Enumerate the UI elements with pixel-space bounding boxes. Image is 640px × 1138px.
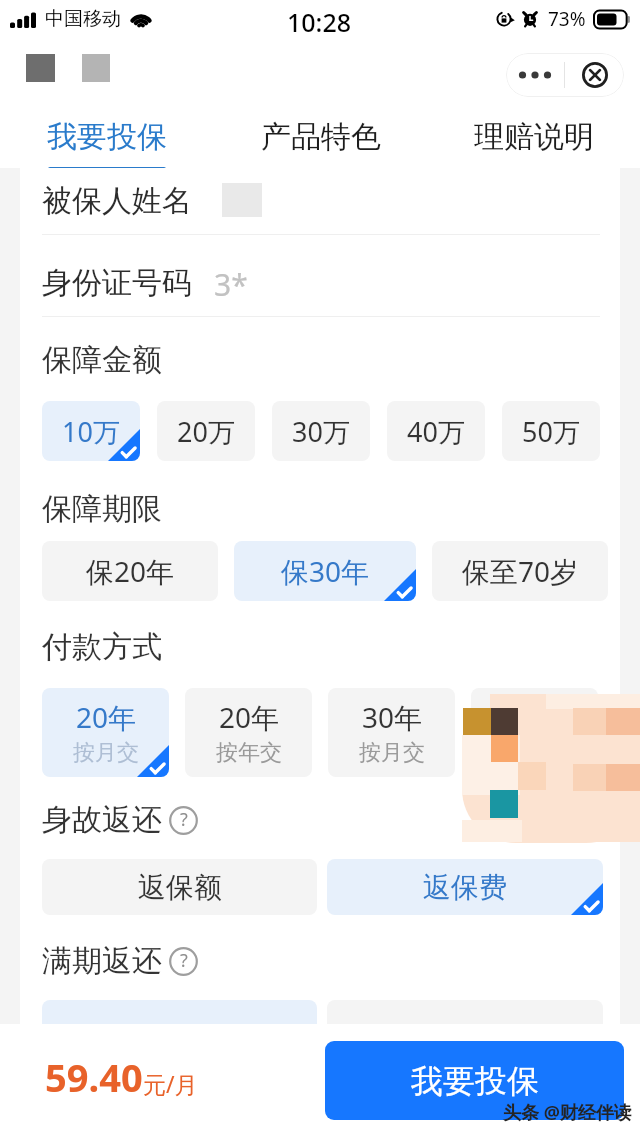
staticText: 按月交: [73, 739, 139, 767]
staticText: 身份证号码: [42, 264, 192, 300]
button[interactable]: 保20年: [42, 541, 218, 601]
staticText: 元/月: [143, 1068, 198, 1099]
staticText: 20年: [219, 698, 280, 736]
staticText: 40万: [407, 413, 465, 450]
button[interactable]: 理赔说明: [427, 106, 640, 168]
staticText: 20万: [177, 413, 235, 450]
staticText: 3*: [214, 264, 248, 300]
staticText: 返保费: [423, 870, 507, 905]
button[interactable]: 10万: [42, 401, 140, 461]
button[interactable]: 30万: [272, 401, 370, 461]
staticText: 30年: [362, 698, 423, 736]
staticText: 中国移动: [45, 7, 121, 31]
button[interactable]: 40万: [387, 401, 485, 461]
button[interactable]: 50万: [502, 401, 600, 461]
button[interactable]: Close: [565, 53, 624, 97]
button[interactable]: 返保额: [42, 859, 317, 915]
button[interactable]: 20年: [42, 688, 169, 777]
button[interactable]: 20万: [157, 401, 255, 461]
staticText: 保20年: [86, 552, 175, 590]
button[interactable]: 产品特色: [214, 106, 427, 168]
button[interactable]: [471, 688, 598, 777]
staticText: 身故返还: [42, 801, 162, 839]
staticText: 被保人姓名: [42, 182, 192, 218]
staticText: 付款方式: [42, 628, 162, 666]
staticText: 按年交: [216, 739, 282, 767]
button[interactable]: 保30年: [234, 541, 416, 601]
staticText: 73%: [548, 6, 586, 32]
staticText: 满期返还: [42, 942, 162, 980]
staticText: 59.40: [45, 1051, 143, 1103]
staticText: 30万: [292, 413, 350, 450]
staticText: 产品特色: [261, 118, 381, 156]
staticText: 10万: [62, 413, 120, 450]
staticText: 50万: [522, 413, 580, 450]
button[interactable]: [42, 1000, 317, 1056]
button[interactable]: 我要投保: [325, 1041, 624, 1120]
button[interactable]: [327, 1000, 603, 1056]
button[interactable]: 返保费: [327, 859, 603, 915]
staticText: 返保额: [138, 870, 222, 905]
button[interactable]: 20年: [185, 688, 312, 777]
button[interactable]: More options: [506, 53, 564, 97]
staticText: 保至70岁: [462, 552, 579, 590]
staticText: ?: [180, 948, 188, 973]
staticText: 头条 @财经伴读: [503, 1100, 632, 1125]
staticText: 按月交: [359, 739, 425, 767]
button[interactable]: 30年: [328, 688, 455, 777]
staticText: 我要投保: [411, 1061, 539, 1101]
staticText: 保障金额: [42, 341, 162, 379]
staticText: ?: [180, 807, 188, 832]
button[interactable]: 保至70岁: [432, 541, 608, 601]
button[interactable]: 我要投保: [0, 106, 214, 168]
staticText: 保30年: [281, 552, 370, 590]
staticText: 10:28: [287, 5, 352, 39]
staticText: 保障期限: [42, 490, 162, 528]
staticText: 我要投保: [47, 118, 167, 156]
staticText: 理赔说明: [474, 118, 594, 156]
button[interactable]: Help: [169, 947, 198, 976]
button[interactable]: Help: [169, 806, 198, 835]
staticText: 20年: [76, 698, 137, 736]
